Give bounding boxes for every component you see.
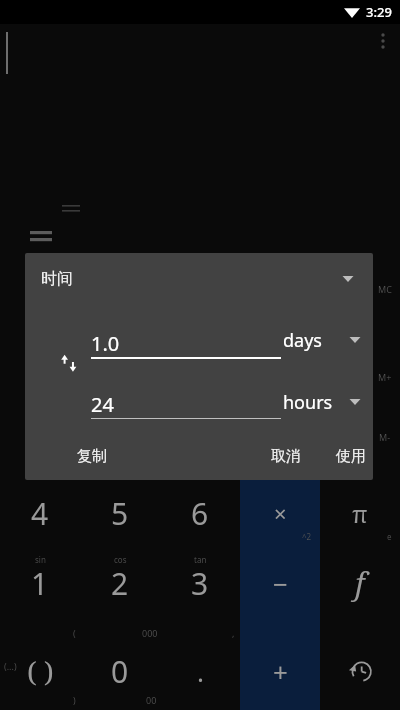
button[interactable]: + [240,636,320,706]
staticText: ) [73,694,76,706]
staticText: sin [35,554,46,565]
staticText: M+ [378,371,392,383]
staticText: MC [378,283,392,295]
button[interactable]: cos [80,548,160,618]
staticText: 取消 [271,447,301,466]
button[interactable]: 5 [80,478,160,548]
staticText: days [283,328,322,353]
staticText: 1 [31,563,49,604]
staticText: e [387,531,392,542]
button[interactable]: − [240,548,320,618]
staticText: f [355,563,365,604]
staticText: ( ) [27,652,54,690]
button[interactable]: 6 [160,478,240,548]
button[interactable]: ^2 [240,478,320,548]
button[interactable]: . [160,636,240,706]
staticText: hours [283,390,333,415]
staticText: − [273,566,288,601]
staticText: cos [114,554,127,565]
staticText: 3:29 [366,3,392,21]
button[interactable]: Swap units [54,348,84,378]
button[interactable]: More options [368,26,398,56]
button[interactable]: f [320,548,400,618]
button[interactable]: hours [277,383,373,421]
staticText: 000 [142,627,158,639]
button[interactable]: History [320,636,400,706]
button[interactable]: 4 [0,478,80,548]
staticText: . [197,654,204,689]
staticText: 使用 [336,447,366,466]
staticText: 2 [111,563,129,604]
button[interactable]: 复制 [65,439,119,473]
staticText: × [274,498,287,528]
staticText: M- [379,431,391,443]
staticText: 4 [31,493,49,534]
staticText: 3 [191,563,209,604]
staticText: 时间 [41,269,73,289]
button[interactable]: sin [0,548,80,618]
staticText: ^2 [302,531,312,542]
button[interactable]: ( ) [0,636,80,706]
button[interactable]: 0 [80,636,160,706]
button[interactable]: days [277,321,373,359]
staticText: 1.0 [91,330,120,357]
staticText: (...) [4,660,17,672]
staticText: + [273,654,288,689]
staticText: 6 [191,493,209,534]
staticText: tan [194,554,207,565]
staticText: , [232,627,235,639]
button[interactable]: 时间 [25,253,373,305]
staticText: π [352,497,368,530]
staticText: ( [73,627,76,639]
staticText: 0 [111,651,129,692]
staticText: 00 [146,694,157,706]
button[interactable]: e [320,478,400,548]
staticText: 24 [91,391,114,418]
button[interactable]: 1.0 [91,325,281,361]
button[interactable]: tan [160,548,240,618]
button[interactable]: 24 [91,386,281,422]
button[interactable]: 使用 [324,439,373,473]
staticText: 5 [111,493,129,534]
staticText: 复制 [77,447,107,466]
button[interactable]: 取消 [259,439,313,473]
